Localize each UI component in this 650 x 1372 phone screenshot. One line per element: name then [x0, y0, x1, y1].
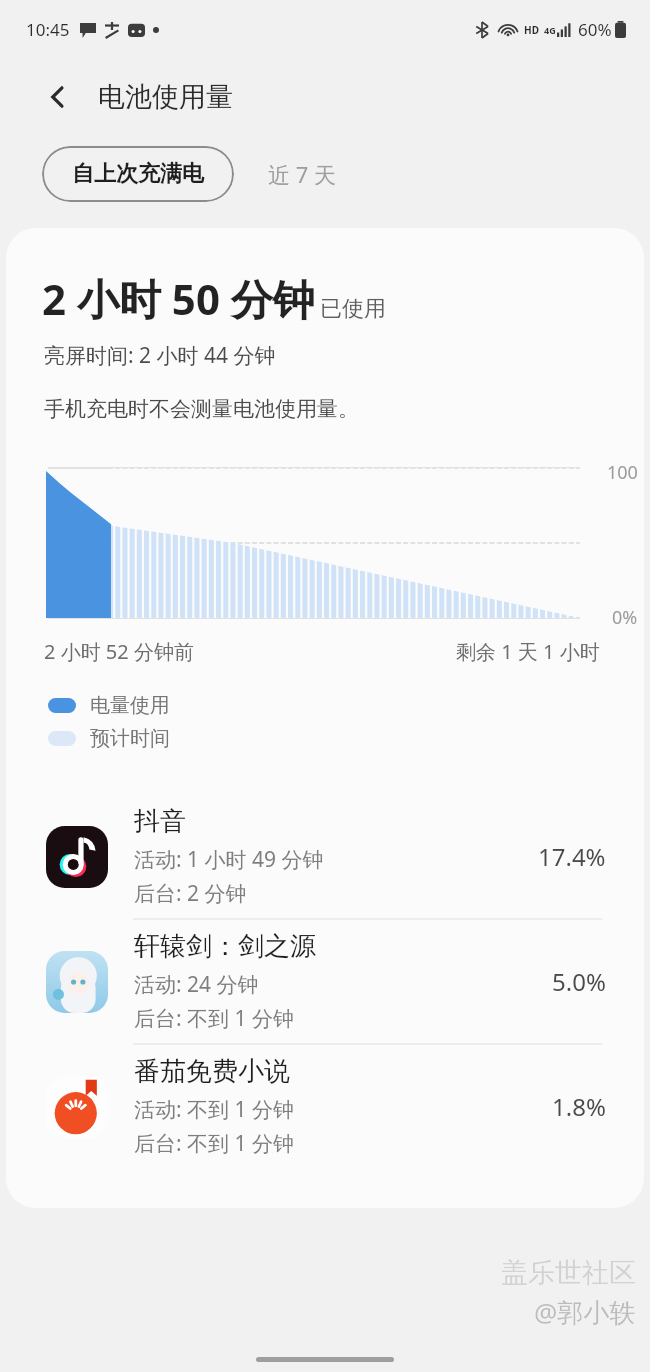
staticText: 10:45 — [26, 18, 70, 41]
button[interactable]: 自上次充满电 — [42, 146, 234, 202]
button[interactable]: 近 7 天 — [234, 146, 371, 202]
staticText: 抖音 — [134, 805, 186, 838]
staticText: @郭小轶 — [534, 1294, 636, 1330]
staticText: 轩辕剑：剑之源 — [134, 930, 316, 963]
button[interactable]: 轩辕剑：剑之源 — [6, 920, 644, 1043]
staticText: 后台: 2 分钟 — [134, 879, 247, 908]
staticText: 0% — [612, 605, 638, 630]
staticText: 5.0% — [552, 965, 606, 998]
staticText: HD — [524, 23, 539, 37]
staticText: 后台: 不到 1 分钟 — [134, 1004, 295, 1033]
staticText: 盖乐世社区 — [501, 1256, 636, 1290]
staticText: 活动: 24 分钟 — [134, 970, 259, 999]
staticText: 2 小时 50 分钟 — [42, 270, 315, 327]
staticText: 活动: 不到 1 分钟 — [134, 1095, 295, 1124]
staticText: 近 7 天 — [268, 159, 337, 189]
staticText: 已使用 — [320, 295, 386, 323]
staticText: 番茄免费小说 — [134, 1055, 290, 1088]
staticText: 17.4% — [538, 840, 606, 873]
staticText: 电量使用 — [90, 693, 170, 718]
button[interactable]: 返回 — [36, 75, 80, 119]
staticText: 60% — [578, 18, 612, 41]
button[interactable]: 抖音 — [6, 795, 644, 918]
staticText: 100 — [607, 460, 638, 485]
staticText: 后台: 不到 1 分钟 — [134, 1129, 295, 1158]
staticText: 剩余 1 天 1 小时 — [456, 638, 600, 665]
staticText: 亮屏时间: 2 小时 44 分钟 — [44, 341, 276, 370]
staticText: 4G — [544, 24, 556, 36]
button[interactable]: 番茄免费小说 — [6, 1045, 644, 1168]
staticText: 1.8% — [552, 1090, 606, 1123]
staticText: 电池使用量 — [98, 80, 233, 114]
staticText: 手机充电时不会测量电池使用量。 — [44, 396, 359, 422]
staticText: 活动: 1 小时 49 分钟 — [134, 845, 324, 874]
staticText: 预计时间 — [90, 726, 170, 751]
staticText: 2 小时 52 分钟前 — [44, 638, 194, 665]
staticText: 自上次充满电 — [72, 160, 204, 188]
